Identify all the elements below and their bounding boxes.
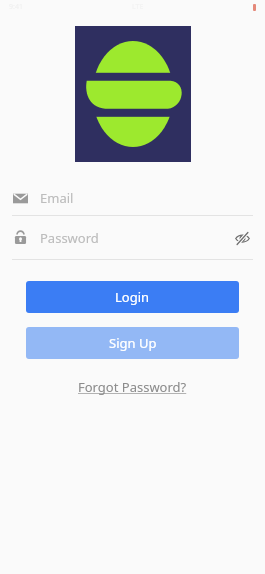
staticText: Sign Up [109,334,157,352]
button[interactable]: Show password [232,228,252,248]
button[interactable]: Email [0,181,265,215]
staticText: Email [40,189,74,207]
staticText: Login [115,288,150,306]
staticText: Forgot Password? [78,378,187,396]
button[interactable]: Forgot Password? [68,374,197,400]
staticText: Password [40,229,99,247]
button[interactable]: Login [26,281,239,313]
button[interactable]: Sign Up [26,327,239,359]
button[interactable]: Password [0,216,265,259]
